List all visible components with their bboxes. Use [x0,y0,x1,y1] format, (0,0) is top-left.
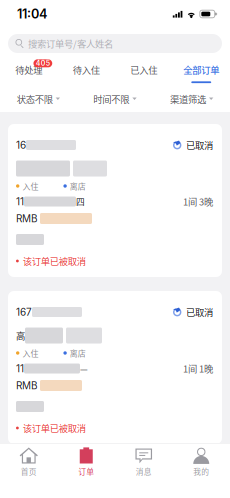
staticText: 已入住 [130,63,157,76]
staticText: 该订单已被取消 [23,254,86,268]
staticText: 该订单已被取消 [23,421,86,435]
button[interactable]: 状态不限 [0,87,77,111]
button[interactable]: 我的 [172,445,230,479]
staticText: 首页 [21,466,37,477]
button[interactable]: 待入住 [57,59,115,87]
staticText: 入住 [22,347,38,359]
staticText: 1间 1晚 [183,362,213,375]
staticText: 已取消 [186,138,213,152]
staticText: 入住 [22,180,38,192]
button[interactable]: 已入住 [115,59,172,87]
staticText: 高 [16,329,25,342]
staticText: 渠道筛选 [170,92,206,106]
staticText: 待入住 [73,63,100,76]
staticText: 16 [16,139,26,151]
staticText: — [80,362,88,375]
button[interactable]: 167 [8,291,222,444]
staticText: 状态不限 [17,92,53,106]
button[interactable]: 首页 [0,445,57,479]
staticText: 离店 [70,180,86,192]
staticText: 167 [16,306,32,318]
staticText: 订单 [78,466,94,477]
button[interactable]: 待处理 [0,59,57,87]
button[interactable]: 16 [8,124,222,277]
button[interactable]: 搜索订单号/客人姓名 [8,34,222,53]
staticText: 全部订单 [183,63,219,76]
staticText: 已取消 [186,305,213,319]
staticText: 1间 3晚 [183,195,213,208]
staticText: RMB [16,212,38,225]
staticText: 11 [16,195,24,208]
staticText: 405 [36,59,50,67]
button[interactable]: 渠道筛选 [153,87,230,111]
staticText: 消息 [136,466,152,477]
button[interactable]: 消息 [115,445,172,479]
staticText: RMB [16,379,38,392]
staticText: 四 [76,195,85,208]
button[interactable]: 订单 [57,445,115,479]
staticText: 11:04 [17,6,47,22]
staticText: 11 [16,362,24,375]
staticText: 我的 [193,466,209,477]
staticText: 时间不限 [93,92,129,106]
button[interactable]: 时间不限 [77,87,153,111]
button[interactable]: 全部订单 [172,59,230,87]
staticText: 离店 [70,347,86,359]
staticText: 待处理 [15,63,42,76]
staticText: 搜索订单号/客人姓名 [28,37,113,50]
